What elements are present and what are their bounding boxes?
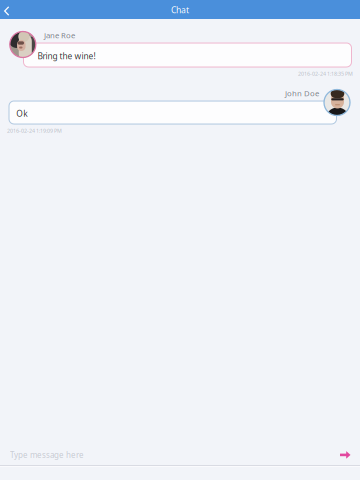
button[interactable]: Jane Roe [0, 31, 360, 79]
staticText: Ok [16, 108, 27, 119]
button[interactable]: Type message here [0, 445, 360, 465]
button[interactable]: John Doe [0, 89, 360, 135]
staticText: Type message here [10, 450, 84, 460]
button[interactable]: Back [0, 0, 16, 19]
staticText: 2016-02-24 1:19:09 PM [7, 127, 62, 134]
staticText: John Doe [285, 88, 319, 98]
staticText: Chat [171, 4, 189, 16]
staticText: 2016-02-24 1:18:35 PM [298, 70, 353, 77]
staticText: Jane Roe [44, 30, 75, 40]
staticText: Bring the wine! [37, 50, 95, 62]
